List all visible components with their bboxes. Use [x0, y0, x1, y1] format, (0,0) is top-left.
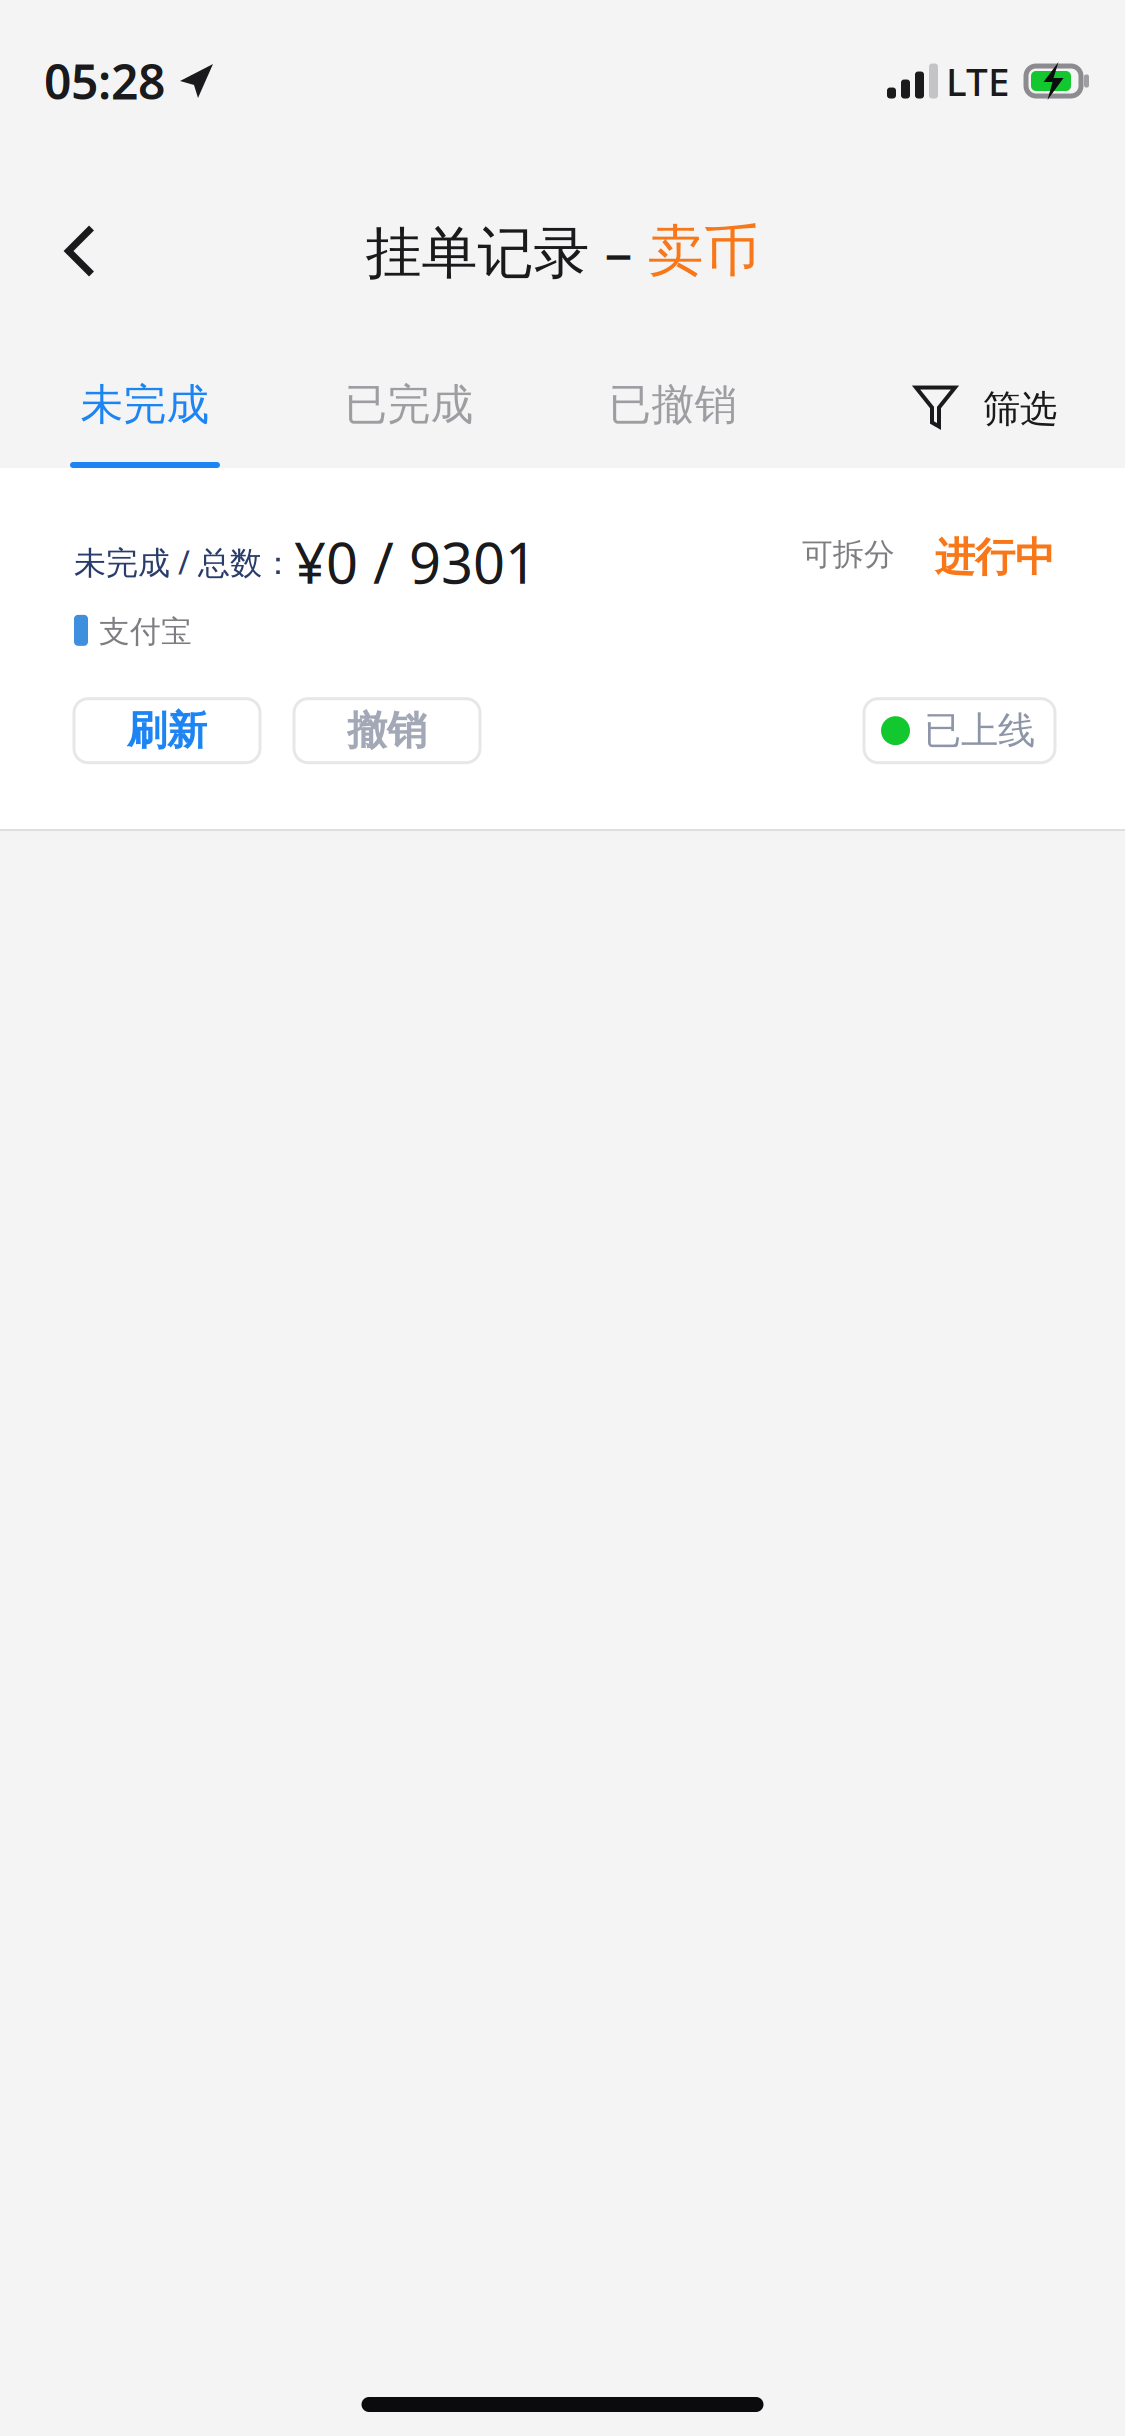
button[interactable]: Back: [30, 201, 130, 301]
button[interactable]: 已完成: [277, 332, 541, 468]
button[interactable]: 撤销: [294, 699, 480, 763]
button[interactable]: 未完成: [13, 332, 277, 468]
staticText: 卖币: [647, 217, 759, 285]
staticText: 未完成 / 总数：: [74, 541, 294, 583]
staticText: 进行中: [935, 533, 1055, 582]
staticText: 05:28: [44, 49, 165, 113]
staticText: 已上线: [924, 708, 1035, 754]
button[interactable]: 刷新: [74, 699, 260, 763]
staticText: 刷新: [127, 706, 207, 755]
staticText: 挂单记录 –: [365, 214, 647, 288]
staticText: 可拆分: [802, 536, 895, 573]
button[interactable]: 筛选: [913, 332, 1125, 468]
staticText: 撤销: [347, 706, 427, 755]
staticText: 已完成: [344, 379, 473, 431]
button[interactable]: 已撤销: [541, 332, 805, 468]
button[interactable]: 已上线: [864, 699, 1055, 763]
staticText: 已撤销: [608, 379, 737, 431]
staticText: 支付宝: [99, 613, 192, 651]
staticText: ¥0 / 9301: [294, 525, 537, 599]
staticText: 筛选: [983, 386, 1057, 432]
staticText: LTE: [946, 55, 1010, 107]
staticText: 未完成: [80, 379, 209, 431]
